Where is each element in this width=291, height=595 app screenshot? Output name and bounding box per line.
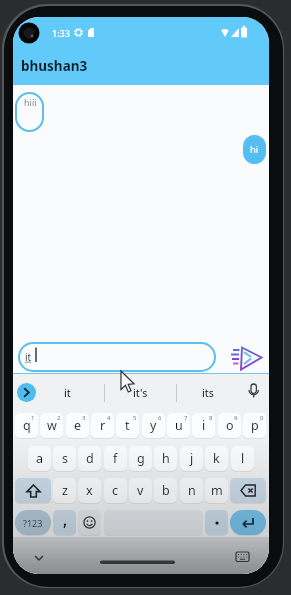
button[interactable]	[230, 510, 266, 535]
button[interactable]: d	[78, 446, 101, 471]
staticText: l	[241, 450, 245, 467]
staticText: z	[62, 482, 68, 499]
staticText: v	[137, 482, 144, 499]
staticText: k	[213, 450, 220, 467]
staticText: hi	[250, 143, 259, 156]
button[interactable]	[17, 383, 36, 402]
staticText: t	[125, 417, 130, 434]
staticText: a	[36, 450, 44, 467]
button[interactable]	[205, 510, 228, 535]
button[interactable]	[15, 92, 44, 132]
button[interactable]: m	[205, 478, 228, 503]
staticText: 5	[133, 414, 137, 422]
staticText: r	[100, 417, 106, 434]
staticText: hiii	[24, 96, 37, 108]
staticText: x	[86, 482, 93, 499]
staticText: j	[190, 450, 194, 467]
staticText: it	[25, 350, 32, 364]
staticText: it	[64, 386, 71, 400]
staticText: s	[62, 450, 68, 467]
button[interactable]: b	[154, 478, 177, 503]
button[interactable]: l	[231, 446, 254, 471]
button[interactable]	[230, 478, 266, 503]
staticText: 1:33	[52, 27, 70, 39]
staticText: m	[211, 482, 223, 499]
staticText: 7	[184, 414, 188, 422]
staticText: 0	[260, 414, 264, 422]
button[interactable]: o	[218, 413, 241, 438]
button[interactable]: f	[104, 446, 127, 471]
button[interactable]: it	[53, 383, 81, 402]
staticText: f	[113, 450, 118, 467]
button[interactable]	[78, 510, 101, 535]
button[interactable]	[231, 343, 267, 373]
staticText: d	[86, 450, 94, 467]
button[interactable]: s	[53, 446, 76, 471]
staticText: it's	[133, 386, 148, 400]
staticText: bhushan3	[21, 57, 88, 75]
button[interactable]: x	[78, 478, 101, 503]
staticText: 1	[31, 414, 35, 422]
staticText: 8	[209, 414, 213, 422]
button[interactable]	[18, 342, 216, 372]
staticText: h	[162, 450, 170, 467]
button[interactable]	[15, 478, 51, 503]
button[interactable]: i	[192, 413, 215, 438]
staticText: 6	[158, 414, 162, 422]
button[interactable]: k	[205, 446, 228, 471]
button[interactable]: its	[194, 383, 222, 402]
button[interactable]	[243, 380, 265, 405]
staticText: ?123	[23, 517, 43, 529]
staticText: p	[251, 417, 259, 434]
button[interactable]: a	[28, 446, 51, 471]
staticText: q	[23, 417, 31, 434]
button[interactable]: e	[66, 413, 89, 438]
button[interactable]	[229, 548, 255, 570]
staticText: y	[150, 417, 157, 434]
button[interactable]: y	[142, 413, 165, 438]
button[interactable]: n	[180, 478, 203, 503]
button[interactable]: u	[167, 413, 190, 438]
button[interactable]	[27, 548, 51, 570]
button[interactable]: p	[243, 413, 266, 438]
button[interactable]: r	[91, 413, 114, 438]
staticText: i	[202, 417, 206, 434]
button[interactable]	[53, 510, 76, 535]
button[interactable]: ?123	[15, 510, 51, 535]
staticText: u	[175, 417, 183, 434]
button[interactable]: w	[40, 413, 63, 438]
staticText: g	[137, 450, 145, 467]
staticText: e	[74, 417, 82, 434]
staticText: 3	[82, 414, 86, 422]
staticText: b	[162, 482, 170, 499]
button[interactable]: j	[180, 446, 203, 471]
staticText: w	[47, 417, 57, 434]
button[interactable]: g	[129, 446, 152, 471]
staticText: its	[202, 386, 214, 400]
button[interactable]: it's	[126, 383, 154, 402]
button[interactable]: h	[154, 446, 177, 471]
staticText: 9	[234, 414, 238, 422]
staticText: 4	[107, 414, 111, 422]
button[interactable]: c	[104, 478, 127, 503]
button[interactable]: v	[129, 478, 152, 503]
button[interactable]: q	[15, 413, 38, 438]
staticText: o	[226, 417, 234, 434]
button[interactable]: hi	[243, 135, 266, 164]
staticText: n	[188, 482, 196, 499]
button[interactable]: t	[116, 413, 139, 438]
staticText: 2	[57, 414, 61, 422]
staticText: c	[112, 482, 119, 499]
button[interactable]: z	[53, 478, 76, 503]
